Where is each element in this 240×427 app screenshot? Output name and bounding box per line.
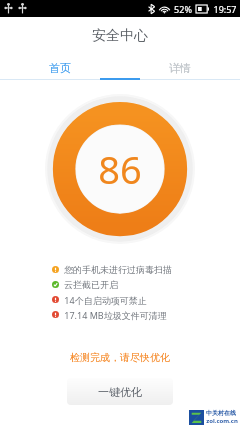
staticText: 86 [98,143,142,195]
button[interactable]: 17.14 MB垃圾文件可清理 [52,307,188,322]
staticText: zol.com.cn [206,417,238,425]
staticText: 19:57 [213,3,237,15]
staticText: 云拦截已开启 [64,279,118,290]
staticText: 17.14 MB垃圾文件可清理 [64,309,167,321]
button[interactable]: 您的手机未进行过病毒扫描 [52,262,188,277]
staticText: 您的手机未进行过病毒扫描 [64,264,172,275]
staticText: 详情 [169,61,191,75]
staticText: 安全中心 [92,27,148,45]
button[interactable]: 一键优化 [67,378,173,405]
staticText: 14个自启动项可禁止 [64,294,147,306]
button[interactable]: 首页 [0,55,120,80]
staticText: 一键优化 [98,385,142,399]
staticText: 中关村在线 [206,409,236,417]
button[interactable]: 详情 [120,55,240,80]
staticText: 52% [174,3,192,15]
staticText: 首页 [49,61,71,75]
staticText: 检测完成，请尽快优化 [70,351,170,364]
button[interactable]: 云拦截已开启 [52,277,188,292]
button[interactable]: 14个自启动项可禁止 [52,292,188,307]
